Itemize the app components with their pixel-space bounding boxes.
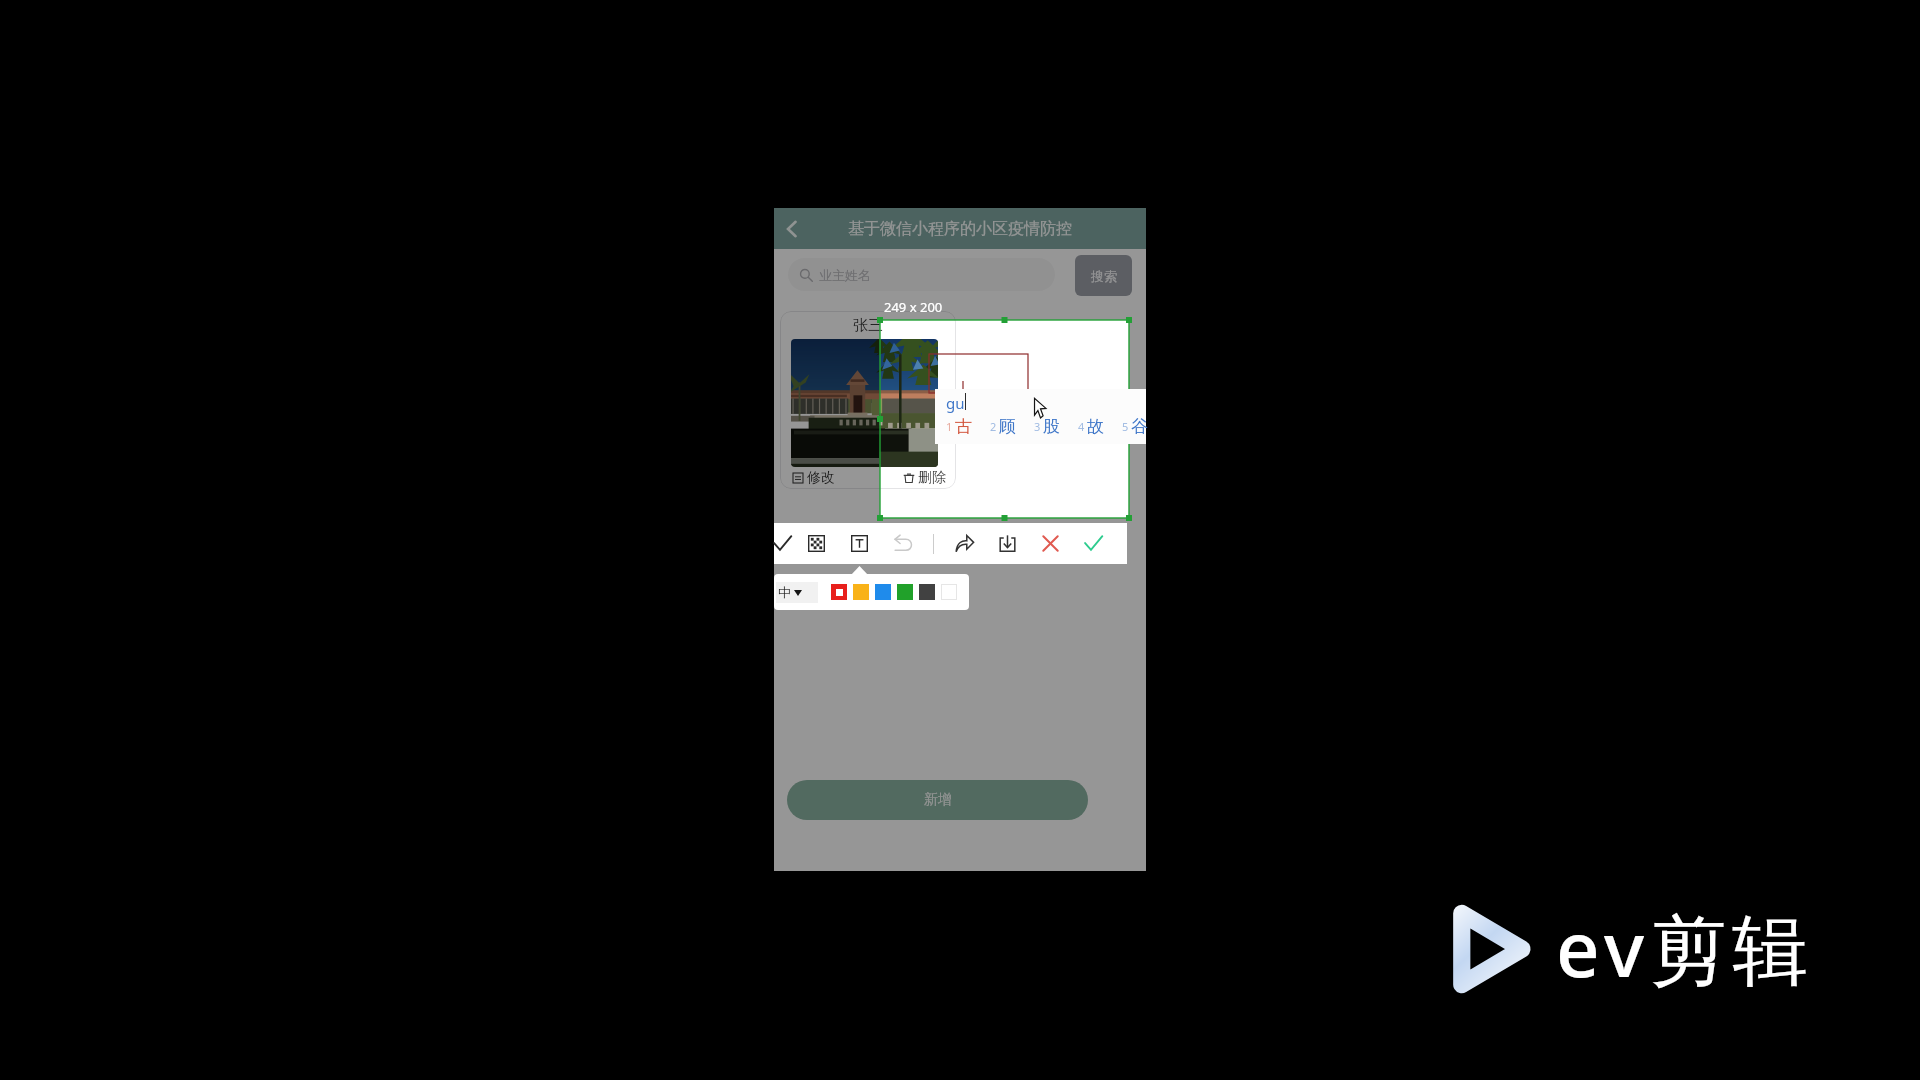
button[interactable]: 1 — [946, 414, 972, 438]
button[interactable]: 撤销 — [892, 532, 915, 555]
button[interactable]: 返回 — [777, 214, 807, 244]
staticText: 3 — [1034, 419, 1041, 434]
button[interactable]: 3 — [1034, 414, 1060, 438]
button[interactable]: 分享 — [953, 532, 976, 555]
staticText: 修改 — [807, 469, 835, 487]
button[interactable]: 4 — [1078, 414, 1104, 438]
button[interactable]: 颜色 — [941, 584, 957, 600]
staticText: 4 — [1078, 419, 1085, 434]
staticText: 删除 — [918, 469, 946, 487]
staticText: 基于微信小程序的小区疫情防控 — [848, 219, 1072, 239]
button[interactable]: 搜索 — [1075, 255, 1132, 296]
button[interactable]: 马赛克 — [805, 532, 828, 555]
staticText: gu — [946, 393, 965, 413]
staticText: 股 — [1043, 416, 1060, 437]
button[interactable]: 文字 — [848, 532, 871, 555]
staticText: 故 — [1087, 416, 1104, 437]
button[interactable]: 保存 — [996, 532, 1019, 555]
staticText: 2 — [990, 419, 997, 434]
staticText: 新增 — [924, 791, 952, 809]
staticText: 古 — [955, 416, 972, 437]
staticText: 中 — [778, 584, 791, 600]
staticText: 谷 — [1131, 416, 1148, 437]
button[interactable]: 新增 — [787, 780, 1088, 820]
staticText: 1 — [946, 419, 953, 434]
button[interactable]: 业主姓名 — [788, 258, 1055, 291]
button[interactable]: 修改 — [780, 467, 868, 489]
staticText: 249 x 200 — [884, 298, 943, 316]
button[interactable]: 确认 — [1082, 532, 1105, 555]
button[interactable]: 颜色 — [831, 584, 847, 600]
button[interactable]: 5 — [1122, 414, 1148, 438]
staticText: 搜索 — [1091, 268, 1117, 284]
button[interactable]: 2 — [990, 414, 1016, 438]
button[interactable]: 画笔 — [771, 532, 794, 555]
staticText: 业主姓名 — [819, 267, 871, 283]
staticText: 张三 — [780, 316, 956, 335]
staticText: ev剪辑 — [1556, 896, 1815, 1000]
button[interactable]: 输入法 — [776, 582, 818, 603]
button[interactable]: 删除 — [868, 467, 956, 489]
staticText: 5 — [1122, 419, 1129, 434]
button[interactable]: 取消 — [1039, 532, 1062, 555]
staticText: 顾 — [999, 416, 1016, 437]
button[interactable]: 张三 — [780, 311, 956, 489]
